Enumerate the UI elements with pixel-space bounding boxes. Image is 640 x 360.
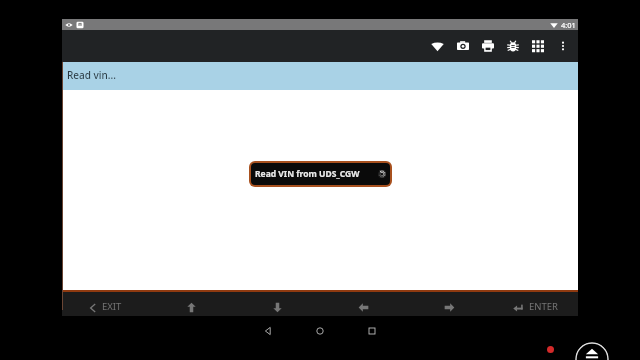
staticText: EXIT	[102, 300, 122, 313]
button[interactable]: Screenshot	[450, 33, 475, 59]
button[interactable]: Read vin...	[62, 62, 578, 90]
button[interactable]: Show toolbar	[575, 342, 609, 360]
button[interactable]: Down	[234, 292, 320, 322]
staticText: 4:01	[561, 20, 576, 30]
button[interactable]: Back	[253, 316, 283, 345]
button[interactable]: Left	[320, 292, 406, 322]
staticText: Read vin...	[67, 68, 116, 82]
button[interactable]: Print	[475, 33, 500, 59]
button[interactable]: Recents	[357, 316, 387, 345]
button[interactable]: Read VIN from UDS_CGW	[251, 163, 390, 185]
button[interactable]: Apps	[525, 33, 550, 59]
button[interactable]: Enter	[492, 292, 578, 322]
button[interactable]: Right	[406, 292, 492, 322]
button[interactable]: Wifi	[425, 33, 450, 59]
button[interactable]: Exit	[62, 292, 148, 322]
staticText: ENTER	[529, 300, 558, 313]
button[interactable]: Up	[148, 292, 234, 322]
button[interactable]: Home	[305, 316, 335, 345]
button[interactable]: More options	[550, 33, 575, 59]
staticText: Read VIN from UDS_CGW	[255, 168, 360, 180]
button[interactable]: Debug	[500, 33, 525, 59]
